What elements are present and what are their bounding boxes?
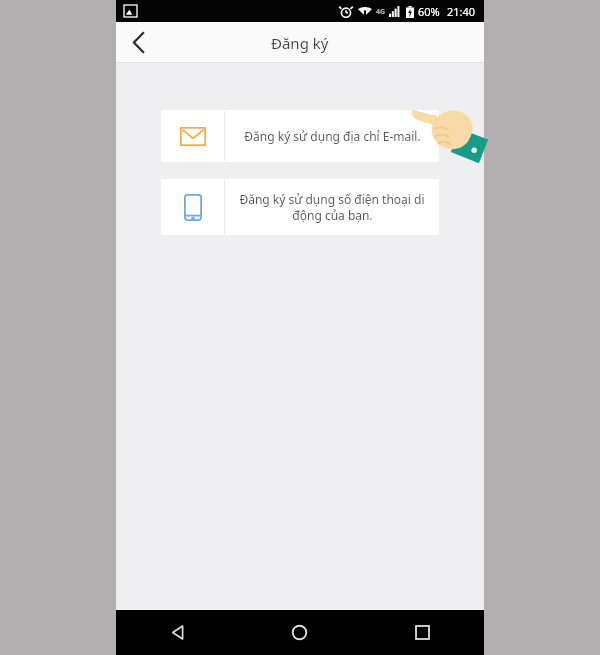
staticText: Đăng ký sử dụng địa chỉ E-mail.: [244, 128, 421, 144]
button[interactable]: Recents: [361, 610, 484, 655]
staticText: 21:40: [447, 4, 476, 19]
staticText: 4G: [376, 7, 386, 17]
staticText: 60%: [418, 4, 440, 19]
button[interactable]: Back: [116, 22, 160, 63]
button[interactable]: Đăng ký sử dụng số điện thoại di: [161, 179, 439, 235]
staticText: Đăng ký sử dụng số điện thoại di: [239, 191, 425, 207]
staticText: động của bạn.: [292, 207, 373, 223]
button[interactable]: Home: [238, 610, 361, 655]
staticText: Đăng ký: [271, 33, 329, 53]
button[interactable]: Đăng ký sử dụng địa chỉ E-mail.: [161, 110, 439, 162]
button[interactable]: Back: [116, 610, 238, 655]
